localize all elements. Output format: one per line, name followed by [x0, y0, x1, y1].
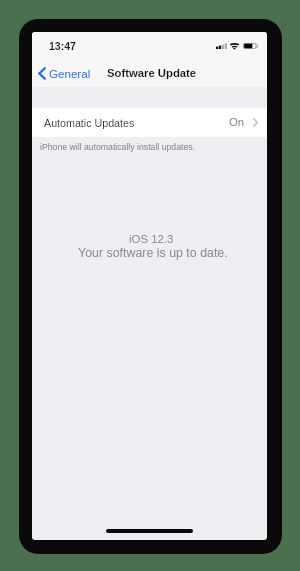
staticText: iOS 12.3: [129, 233, 174, 246]
staticText: General: [49, 67, 91, 80]
staticText: On: [229, 116, 245, 129]
staticText: 13:47: [49, 40, 76, 52]
button[interactable]: Automatic Updates: [32, 108, 267, 137]
staticText: Software Update: [107, 67, 197, 80]
staticText: Your software is up to date.: [78, 246, 228, 260]
button[interactable]: Back to General: [33, 64, 97, 83]
staticText: Automatic Updates: [44, 117, 135, 129]
staticText: iPhone will automatically install update…: [40, 142, 196, 152]
